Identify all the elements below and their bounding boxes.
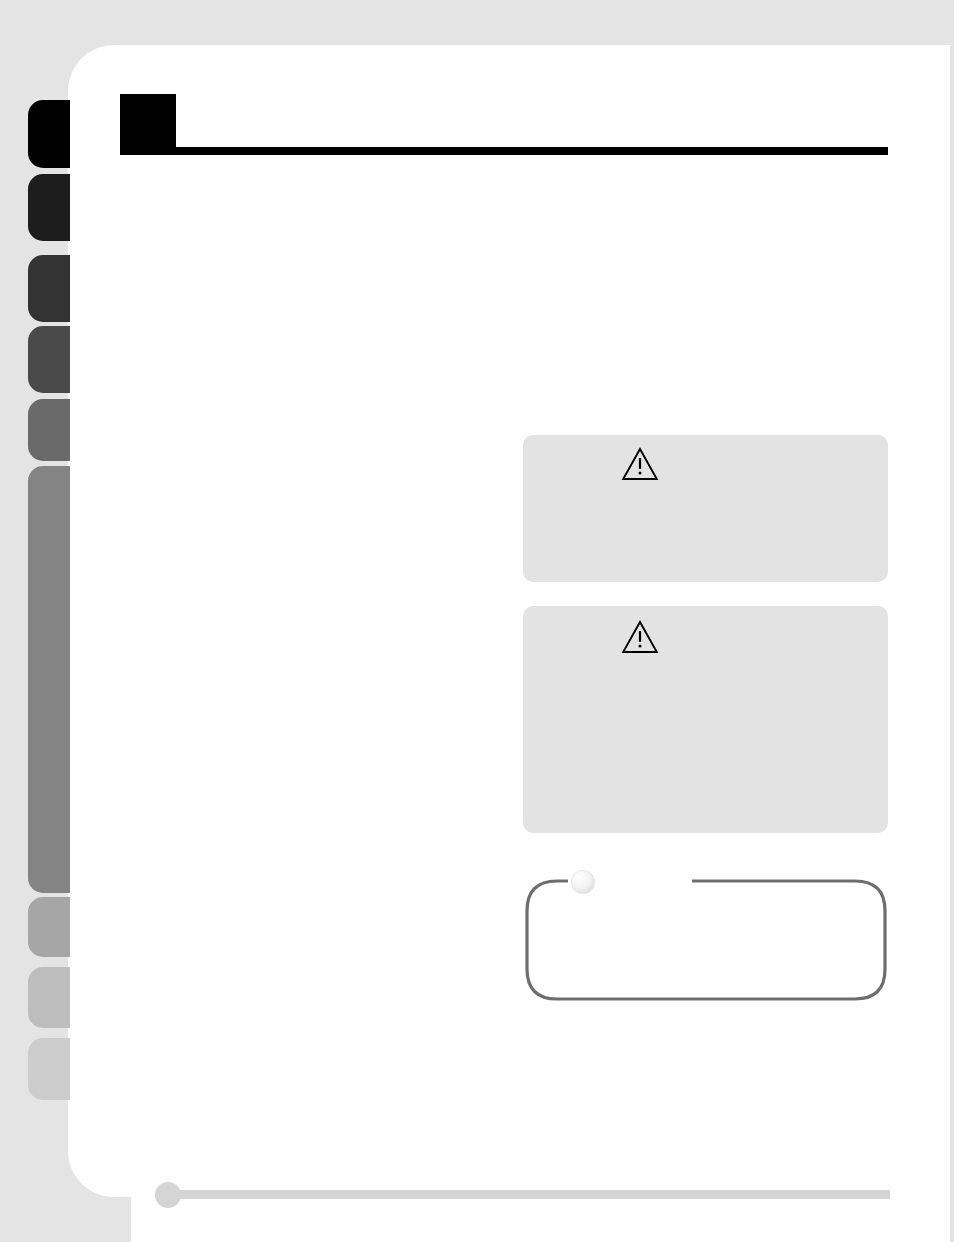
button[interactable]: Chapter 8 (28, 967, 70, 1028)
button[interactable]: Chapter 9 (28, 1038, 70, 1100)
button[interactable]: Chapter 2 (28, 174, 70, 241)
button[interactable]: Chapter 1 (28, 100, 70, 168)
button[interactable]: Chapter 4 (28, 326, 70, 393)
button[interactable]: Chapter 7 (28, 897, 70, 957)
button[interactable]: Chapter 5 (28, 399, 70, 461)
button[interactable]: Chapter 3 (28, 255, 70, 322)
button[interactable]: Chapter 6 (28, 466, 70, 893)
